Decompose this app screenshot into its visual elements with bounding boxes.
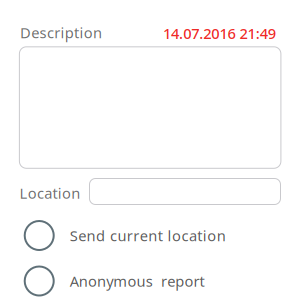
button[interactable]: Location <box>89 178 280 204</box>
button[interactable]: Description <box>19 47 281 168</box>
staticText: Send current location <box>70 226 226 245</box>
staticText: Location <box>19 183 80 203</box>
staticText: Description <box>20 23 102 42</box>
button[interactable]: Send current location <box>25 221 228 250</box>
button[interactable]: Anonymous report <box>25 266 210 295</box>
staticText: 14.07.2016 21:49 <box>163 23 276 43</box>
staticText: Anonymous report <box>70 271 205 291</box>
